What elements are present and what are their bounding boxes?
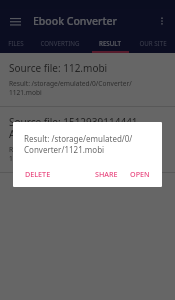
button[interactable]: Open navigation menu — [6, 12, 24, 30]
staticText: RESULT — [99, 39, 121, 47]
button[interactable]: SHARE — [92, 166, 121, 182]
staticText: Result: /storage/emulated/0/ Converter/1… — [24, 133, 133, 155]
button[interactable]: DELETE — [22, 166, 54, 182]
staticText: Source file: 1512939114441- AUTO1.fb2 — [9, 115, 141, 141]
button[interactable]: FILES — [0, 33, 31, 53]
staticText: Source file: 112.mobi — [9, 61, 108, 75]
staticText: OPEN — [130, 169, 150, 179]
button[interactable]: RESULT — [89, 33, 131, 53]
staticText: CONVERTING — [40, 39, 80, 47]
button[interactable]: Source file: 112.mobi — [0, 53, 175, 106]
staticText: FILES — [8, 39, 24, 47]
button[interactable]: OPEN — [127, 166, 153, 182]
staticText: OUR SITE — [139, 39, 167, 47]
staticText: DELETE — [25, 169, 51, 179]
button[interactable]: CONVERTING — [31, 33, 89, 53]
staticText: Result: /storage/emulated/0/Converter/ 1… — [9, 145, 132, 163]
staticText: Ebook Converter — [33, 14, 117, 28]
staticText: Result: /storage/emulated/0/Converter/ 1… — [9, 79, 132, 97]
button[interactable]: More options — [153, 12, 171, 30]
button[interactable]: Source file: 1512939114441- AUTO1.fb2 — [0, 107, 175, 172]
button[interactable]: OUR SITE — [131, 33, 175, 53]
staticText: SHARE — [95, 169, 118, 179]
